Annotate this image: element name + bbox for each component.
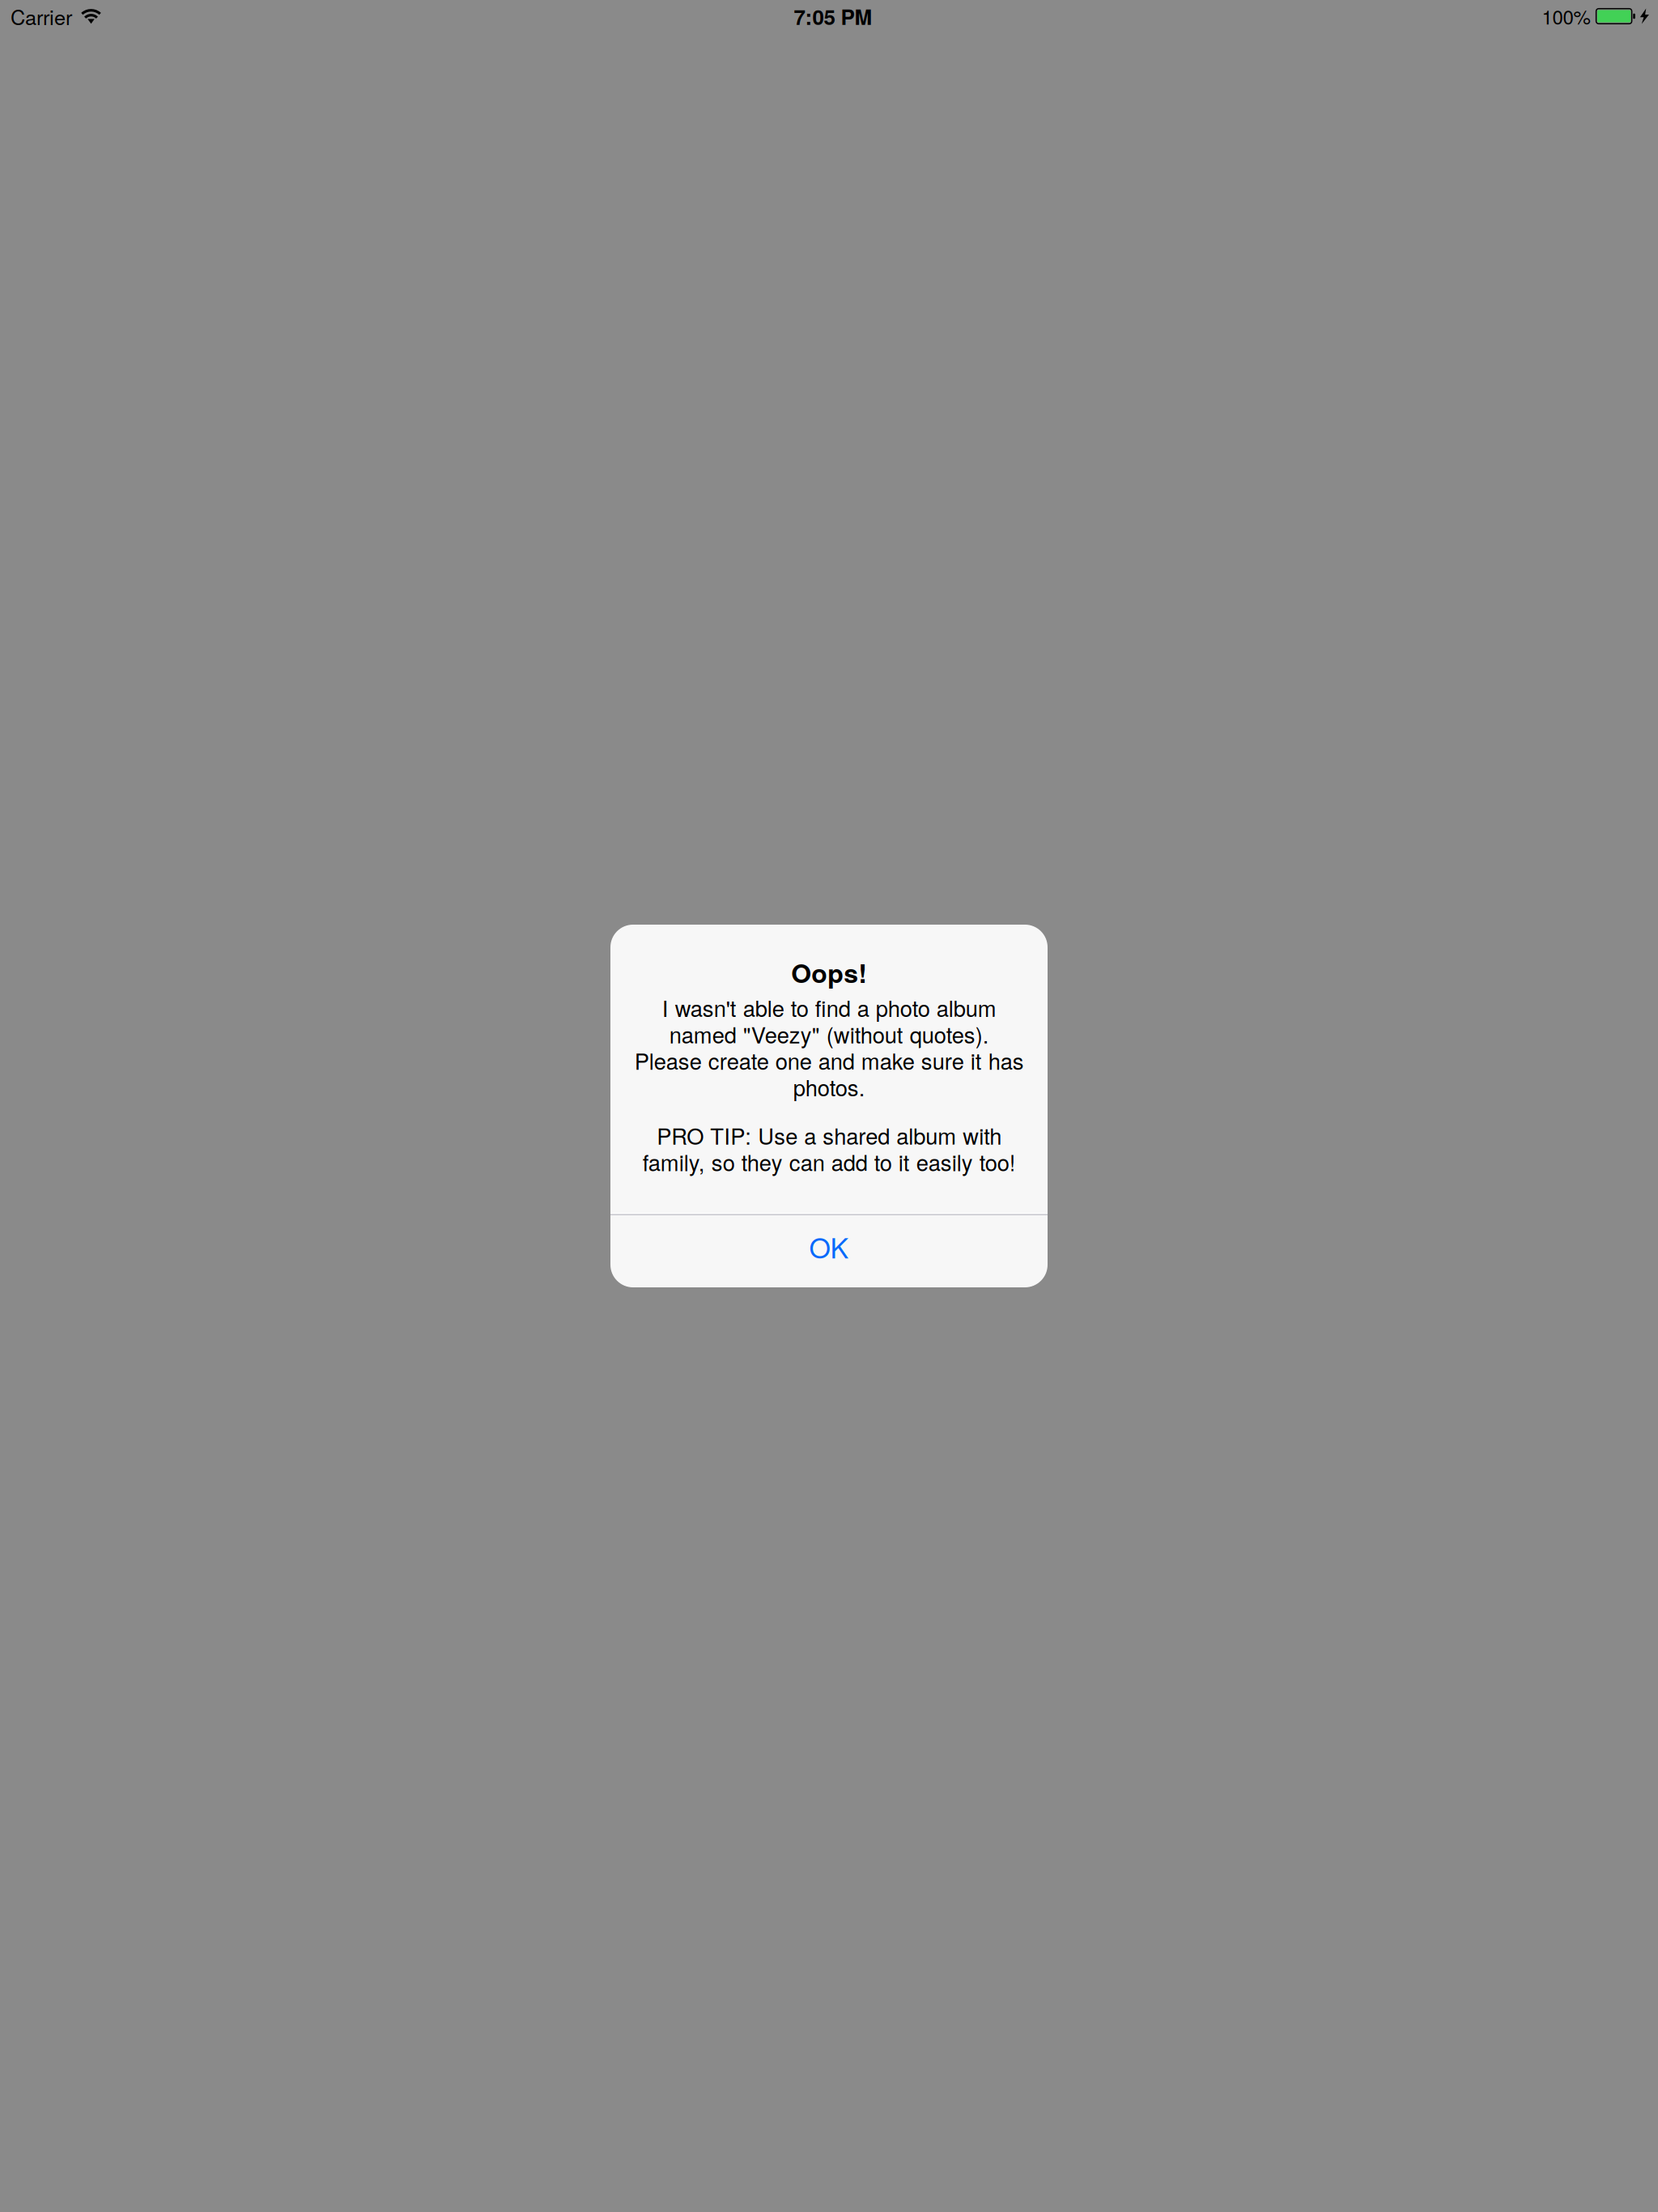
staticText: PRO TIP: Use a shared album with family,… xyxy=(642,1122,1016,1175)
staticText: I wasn't able to find a photo album name… xyxy=(634,994,1024,1100)
staticText: OK xyxy=(809,1227,849,1266)
button[interactable]: OK xyxy=(610,1215,1048,1287)
staticText: Oops! xyxy=(791,954,867,991)
staticText: Carrier xyxy=(11,2,72,31)
staticText: 7:05 PM xyxy=(794,1,872,31)
staticText: 100% xyxy=(1542,2,1590,30)
